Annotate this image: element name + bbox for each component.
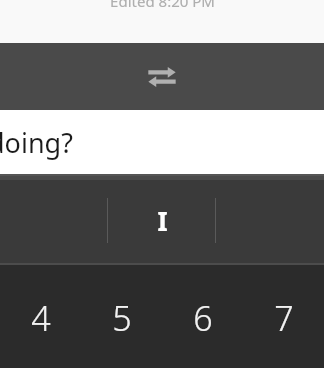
button[interactable]: 6	[162, 265, 243, 368]
staticText: 5	[112, 295, 132, 341]
button[interactable]	[216, 176, 324, 265]
button[interactable]: doing?	[0, 110, 324, 174]
button[interactable]: 5	[81, 265, 162, 368]
staticText: doing?	[0, 124, 73, 161]
staticText: Edited 8:20 PM	[110, 0, 215, 11]
staticText: 4	[31, 295, 51, 341]
staticText: 6	[193, 295, 213, 341]
button[interactable]: Swap	[138, 53, 186, 101]
button[interactable]: 7	[243, 265, 324, 368]
staticText: I	[157, 203, 168, 238]
button[interactable]: I	[108, 176, 216, 265]
button[interactable]: 4	[0, 265, 81, 368]
button[interactable]	[0, 176, 108, 265]
staticText: 7	[274, 295, 294, 341]
